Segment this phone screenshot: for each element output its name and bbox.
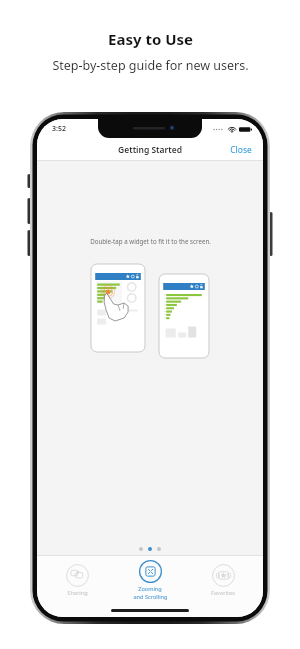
button[interactable]: Zooming — [117, 558, 183, 603]
staticText: Getting Started — [118, 144, 182, 156]
staticText: Close — [230, 144, 252, 156]
staticText: Sharing — [67, 589, 88, 597]
staticText: Easy to Use — [108, 29, 193, 49]
staticText: Zooming — [138, 585, 162, 593]
staticText: Step-by-step guide for new users. — [52, 57, 249, 74]
button[interactable]: Favorites — [190, 562, 256, 599]
button[interactable]: Sharing — [44, 562, 110, 599]
staticText: and Scrolling — [133, 593, 168, 601]
staticText: Double-tap a widget to fit it to the scr… — [90, 237, 211, 245]
button[interactable]: Close — [219, 140, 263, 160]
staticText: 3:52 — [52, 124, 66, 134]
staticText: Favorites — [211, 589, 235, 597]
